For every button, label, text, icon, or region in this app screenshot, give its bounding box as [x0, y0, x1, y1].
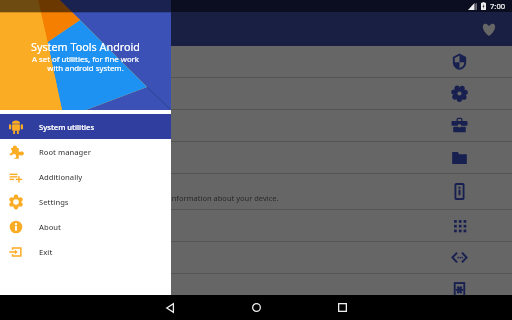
staticText: Application manager [14, 220, 93, 231]
button[interactable]: Back [150, 295, 190, 320]
button[interactable]: Task manager [0, 110, 512, 141]
staticText: Exit [39, 247, 53, 257]
staticText: Plugin manager [14, 88, 74, 99]
button[interactable]: Favorites [475, 15, 503, 43]
button[interactable]: Security manager [0, 46, 512, 77]
staticText: Developer tools [14, 252, 73, 263]
staticText: Additionally [39, 172, 83, 182]
button[interactable]: About device [0, 174, 512, 209]
staticText: About [39, 222, 61, 232]
button[interactable]: Recent apps [322, 295, 362, 320]
staticText: System Tools Android [31, 39, 140, 54]
button[interactable]: Additionally [0, 164, 171, 189]
staticText: This module displays all the most necess… [14, 193, 279, 203]
staticText: Root manager [39, 147, 91, 157]
staticText: Task manager [14, 120, 67, 131]
staticText: 7:00 [490, 1, 506, 11]
button[interactable]: Settings [0, 189, 171, 214]
button[interactable]: Exit [0, 239, 171, 264]
button[interactable]: System utilities [0, 114, 171, 139]
staticText: About device [14, 180, 63, 191]
button[interactable]: Developer tools [0, 242, 512, 273]
staticText: Settings [39, 197, 69, 207]
button[interactable]: Plugin manager [0, 78, 512, 109]
staticText: File manager [14, 152, 64, 163]
button[interactable]: File manager [0, 142, 512, 173]
button[interactable]: Home [236, 295, 276, 320]
button[interactable]: About [0, 214, 171, 239]
staticText: Security manager [14, 56, 81, 67]
button[interactable]: Device settings [0, 274, 512, 305]
button[interactable]: Application manager [0, 210, 512, 241]
staticText: A set of utilities, for fine work with a… [32, 54, 139, 74]
button[interactable]: Root manager [0, 139, 171, 164]
staticText: System utilities [39, 122, 95, 132]
